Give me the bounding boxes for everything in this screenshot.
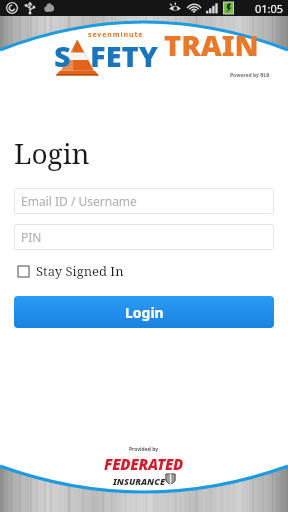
- staticText: sevenminute: [88, 30, 144, 40]
- button[interactable]: Email ID / Username: [14, 188, 274, 214]
- other: Federated Insurance: [0, 446, 288, 487]
- staticText: Login: [125, 303, 164, 322]
- staticText: FEDERATED: [104, 454, 184, 474]
- staticText: Provided by: [129, 446, 159, 453]
- staticText: PIN: [21, 229, 42, 245]
- staticText: Login: [14, 134, 90, 172]
- staticText: 01:05: [255, 1, 284, 16]
- staticText: Email ID / Username: [21, 193, 137, 209]
- button[interactable]: Stay Signed In: [16, 259, 126, 283]
- staticText: S: [54, 36, 71, 75]
- button[interactable]: PIN: [14, 224, 274, 250]
- staticText: Stay Signed In: [36, 262, 124, 280]
- staticText: Powered by BLR: [230, 72, 270, 79]
- staticText: FETY: [90, 36, 158, 75]
- staticText: INSURANCE: [113, 475, 165, 487]
- staticText: TRAINER: [164, 25, 270, 75]
- button[interactable]: Login: [14, 296, 274, 328]
